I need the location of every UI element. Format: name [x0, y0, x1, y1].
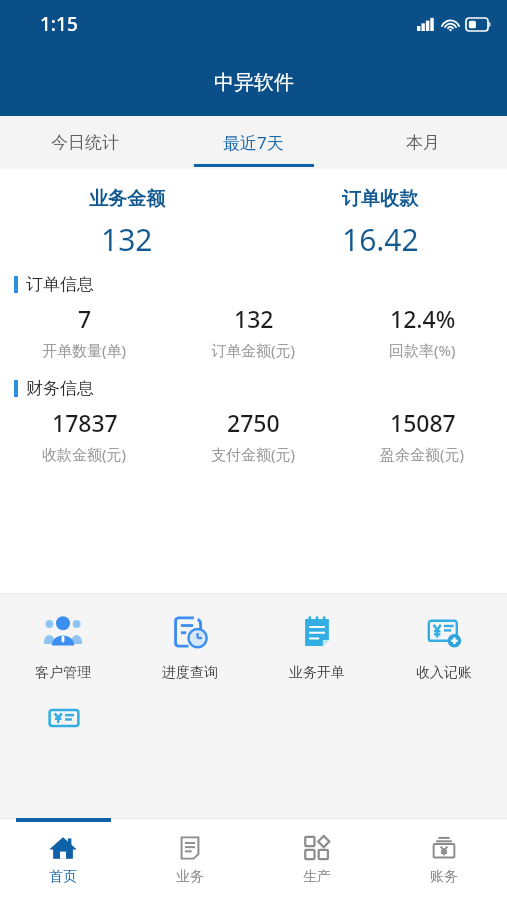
staticText: 订单金额(元) — [211, 340, 296, 360]
button[interactable]: 支出记账 — [0, 696, 127, 740]
staticText: 12.4% — [390, 303, 456, 334]
button[interactable]: 生产 — [253, 818, 380, 900]
staticText: 回款率(%) — [389, 340, 456, 360]
staticText: 132 — [234, 303, 274, 334]
button[interactable]: 最近7天 — [169, 116, 338, 169]
staticText: 业务 — [176, 868, 204, 886]
staticText: 132 — [101, 219, 153, 260]
staticText: 16.42 — [342, 219, 419, 260]
button[interactable]: 业务金额 — [0, 187, 253, 260]
staticText: 盈余金额(元) — [380, 444, 465, 464]
staticText: 业务金额 — [89, 187, 165, 211]
button[interactable]: 业务 — [126, 818, 253, 900]
staticText: 15087 — [390, 407, 456, 438]
staticText: 账务 — [430, 868, 458, 886]
button[interactable]: 首页 — [0, 818, 126, 900]
button[interactable]: 收入记账 — [380, 610, 507, 682]
staticText: 财务信息 — [26, 378, 94, 399]
staticText: 最近7天 — [223, 131, 284, 154]
button[interactable]: 订单收款 — [253, 187, 507, 260]
button[interactable]: 17837 — [0, 407, 169, 464]
staticText: 支付金额(元) — [211, 444, 296, 464]
staticText: 17837 — [52, 407, 118, 438]
staticText: 开单数量(单) — [42, 340, 127, 360]
button[interactable]: 7 — [0, 303, 169, 360]
button[interactable]: 2750 — [169, 407, 338, 464]
staticText: 客户管理 — [35, 664, 91, 682]
button[interactable]: 进度查询 — [126, 610, 253, 682]
staticText: 收款金额(元) — [42, 444, 127, 464]
staticText: 本月 — [406, 132, 440, 153]
button[interactable]: 今日统计 — [0, 116, 169, 169]
staticText: 收入记账 — [416, 664, 472, 682]
staticText: 7 — [78, 303, 92, 334]
staticText: 1:15 — [40, 11, 78, 37]
staticText: 今日统计 — [51, 132, 119, 153]
staticText: 生产 — [303, 868, 331, 886]
button[interactable]: 账务 — [380, 818, 507, 900]
button[interactable]: 本月 — [338, 116, 507, 169]
staticText: 2750 — [227, 407, 280, 438]
button[interactable]: 15087 — [338, 407, 507, 464]
staticText: 首页 — [49, 868, 77, 886]
staticText: 业务开单 — [289, 664, 345, 682]
staticText: 进度查询 — [162, 664, 218, 682]
button[interactable]: 12.4% — [338, 303, 507, 360]
button[interactable]: 业务开单 — [253, 610, 380, 682]
button[interactable]: 132 — [169, 303, 338, 360]
staticText: 订单信息 — [26, 274, 94, 295]
staticText: 订单收款 — [342, 187, 418, 211]
staticText: 中异软件 — [214, 70, 294, 95]
button[interactable]: 客户管理 — [0, 610, 126, 682]
